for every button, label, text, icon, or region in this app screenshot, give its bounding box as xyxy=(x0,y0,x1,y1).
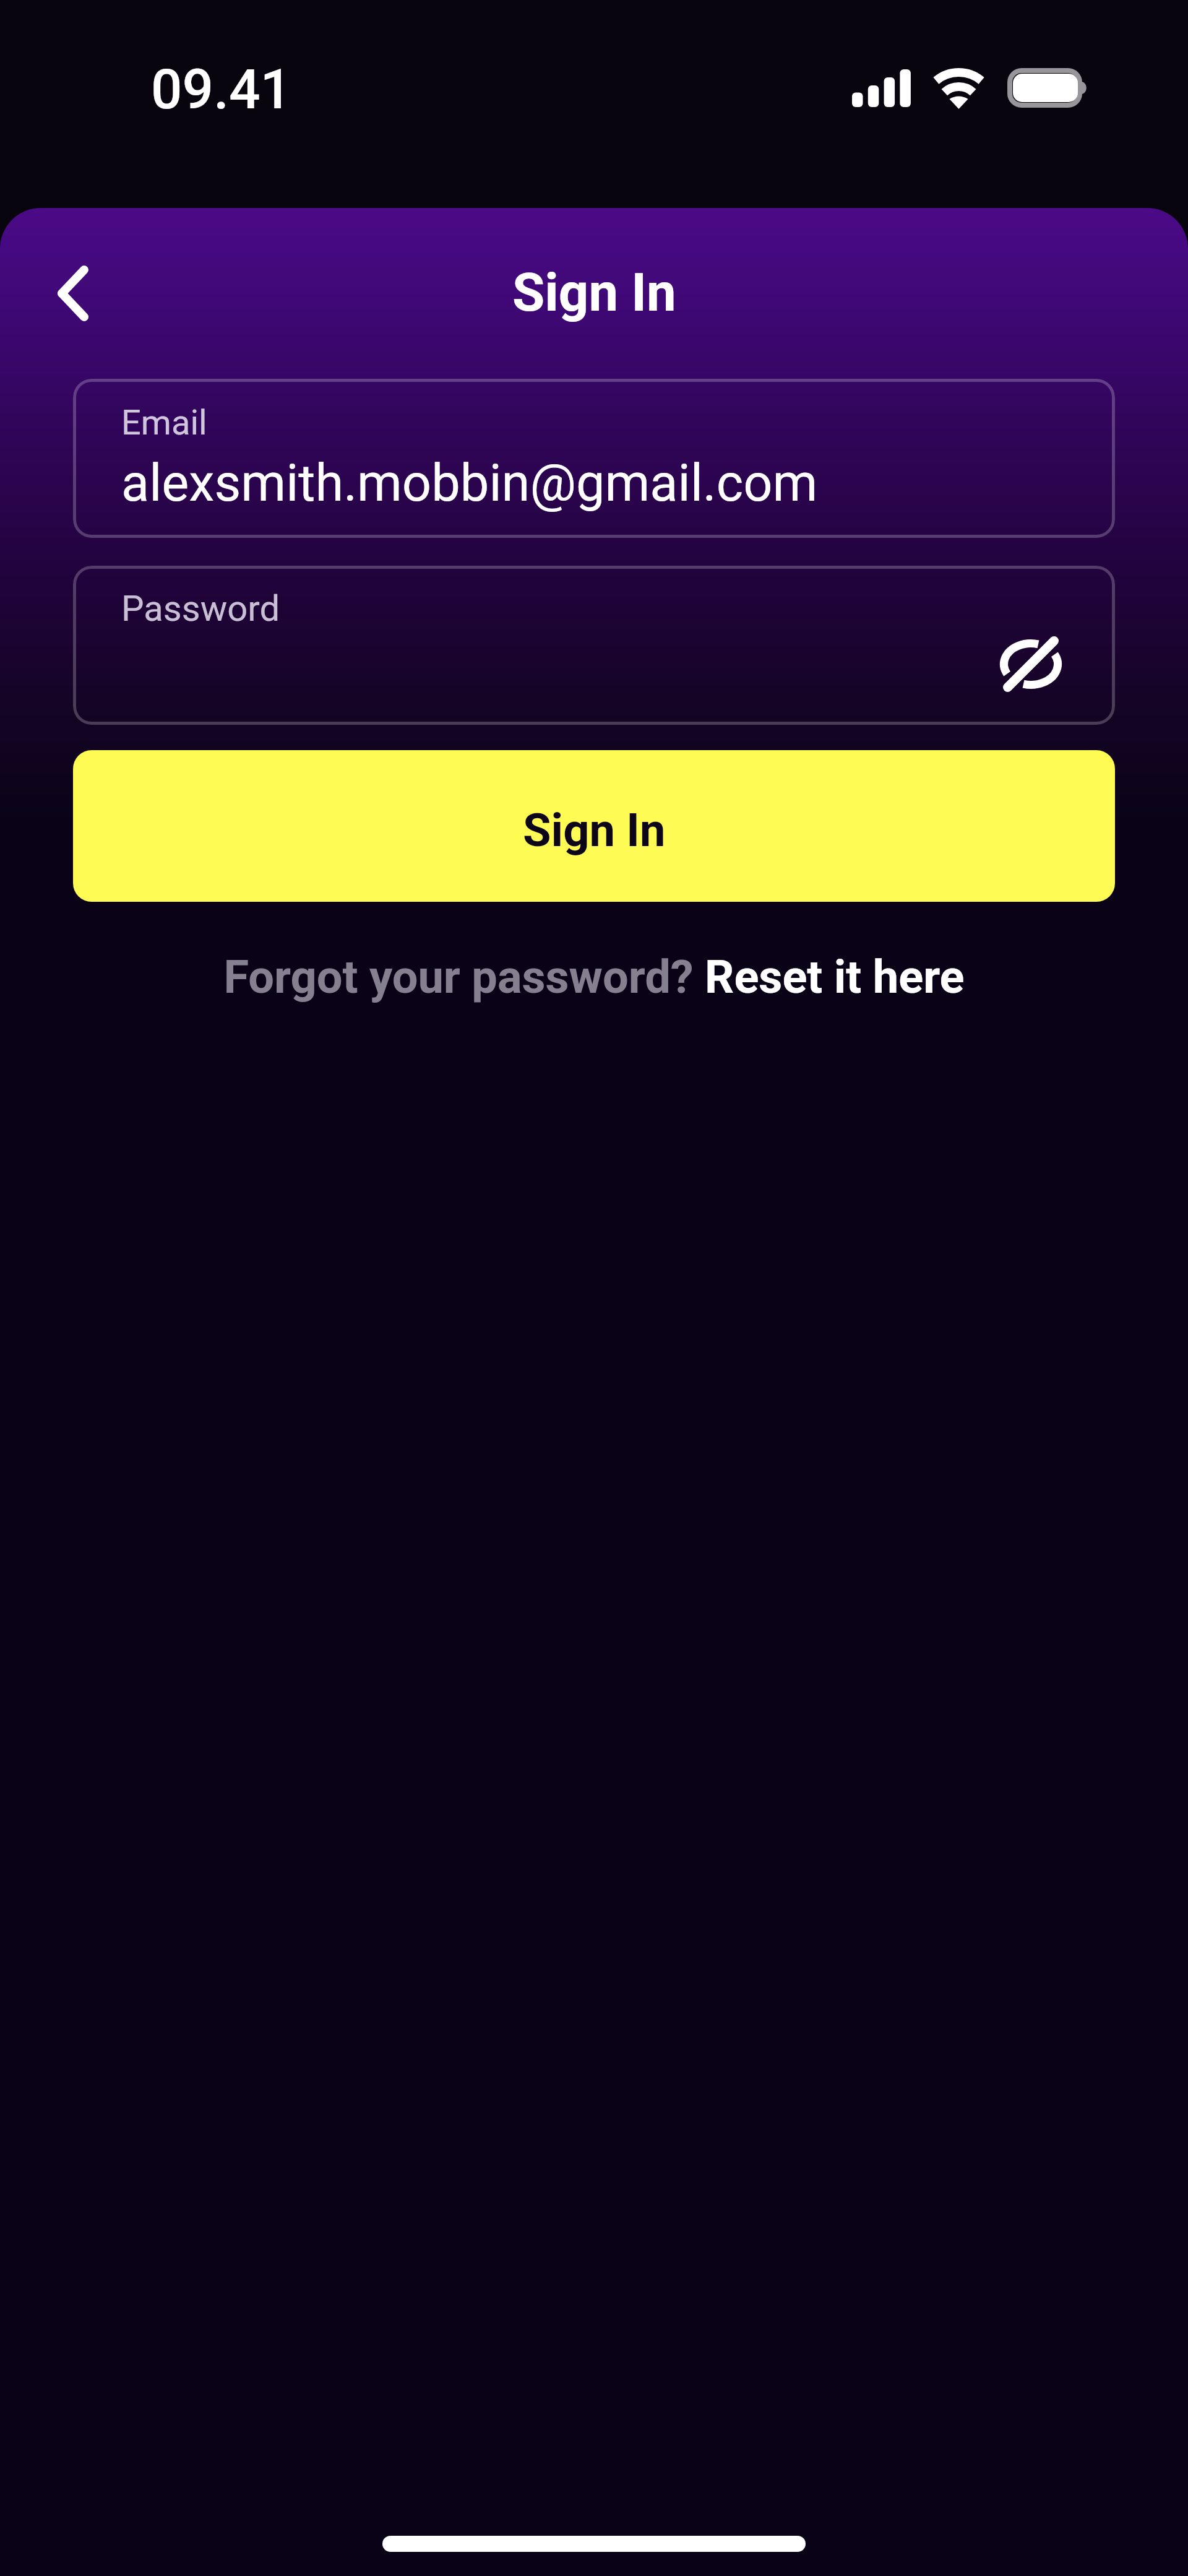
staticText: Sign In xyxy=(523,803,666,857)
button[interactable]: Email xyxy=(73,379,1115,538)
button[interactable]: Forgot your password? Reset it here xyxy=(0,950,1188,1004)
staticText: 09.41 xyxy=(151,57,292,121)
button[interactable]: Show password xyxy=(981,615,1080,714)
staticText: Forgot your password? Reset it here xyxy=(223,950,965,1004)
staticText: Email xyxy=(121,402,207,443)
staticText: Password xyxy=(121,587,280,629)
staticText: alexsmith.mobbin@gmail.com xyxy=(121,453,818,513)
button[interactable]: Password xyxy=(73,566,1115,725)
button[interactable]: Back xyxy=(36,256,110,331)
staticText: Sign In xyxy=(512,262,676,324)
button[interactable]: Sign In xyxy=(73,750,1115,902)
